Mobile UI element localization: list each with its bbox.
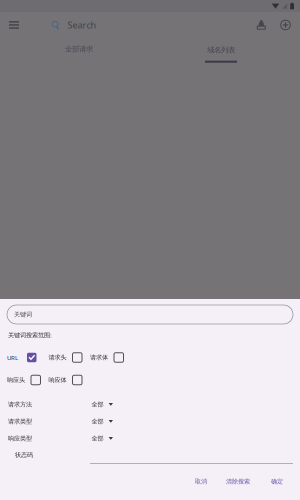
staticText: 全部 [92,435,104,442]
staticText: Search [68,19,97,31]
button[interactable]: Menu [7,18,21,31]
button[interactable]: 请求类型 [0,413,300,430]
button[interactable]: Account [255,18,268,32]
button[interactable]: 关键词 [0,305,300,324]
staticText: 请求体 [90,354,108,361]
button[interactable]: 响应类型 [0,430,300,447]
button[interactable]: 清除搜索 [220,474,256,489]
staticText: 响应类型 [8,435,32,442]
button[interactable]: 确定 [265,474,289,489]
button[interactable]: 域名列表 [156,38,286,64]
button[interactable]: URL [7,351,36,364]
staticText: URL [7,353,18,362]
button[interactable]: Add [278,17,293,32]
staticText: 确定 [271,478,283,485]
staticText: 关键词搜索范围: [8,331,52,339]
staticText: 关键词 [14,311,32,318]
staticText: 域名列表 [207,45,235,55]
staticText: 请求头 [48,354,66,361]
button[interactable]: 请求体 [90,351,123,364]
staticText: 响应体 [48,376,66,384]
staticText: 全部请求 [65,44,93,54]
staticText: 全部 [92,418,104,425]
staticText: 全部 [92,401,104,408]
staticText: 请求方法 [8,401,32,408]
button[interactable]: 全部请求 [14,38,144,64]
staticText: 取消 [195,478,207,485]
staticText: 响应头 [7,376,25,384]
button[interactable]: Search [51,17,97,33]
button[interactable]: 响应体 [48,373,82,386]
staticText: 清除搜索 [226,478,250,485]
button[interactable]: 请求头 [48,351,82,364]
staticText: 请求类型 [8,418,32,425]
button[interactable]: 请求方法 [0,396,300,413]
staticText: 状态码 [15,451,33,459]
button[interactable]: 取消 [189,474,213,489]
button[interactable]: 响应头 [7,373,40,386]
